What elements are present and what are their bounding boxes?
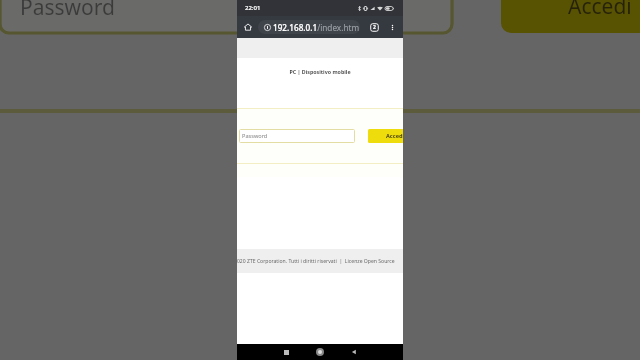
- button[interactable]: Home: [312, 344, 328, 360]
- staticText: 192.168.0.1/index.htm: [273, 22, 360, 33]
- button[interactable]: Home: [239, 18, 257, 36]
- staticText: PC | Dispositivo mobile: [237, 68, 403, 75]
- button[interactable]: Back: [346, 344, 362, 360]
- button[interactable]: Accedi: [368, 129, 403, 143]
- staticText: 2: [373, 24, 376, 31]
- button[interactable]: Tabs: [365, 18, 383, 36]
- staticText: 22:01: [245, 4, 261, 12]
- staticText: Accedi: [386, 132, 403, 140]
- button[interactable]: 192.168.0.1/index.htm: [258, 20, 360, 34]
- staticText: Accedi: [568, 0, 632, 21]
- staticText: Password: [242, 132, 268, 140]
- button[interactable]: Recents: [278, 344, 294, 360]
- button[interactable]: Password: [239, 129, 355, 143]
- button[interactable]: More options: [384, 19, 400, 35]
- staticText: 2020 ZTE Corporation. Tutti i diritti ri…: [237, 258, 395, 265]
- staticText: Password: [20, 0, 115, 22]
